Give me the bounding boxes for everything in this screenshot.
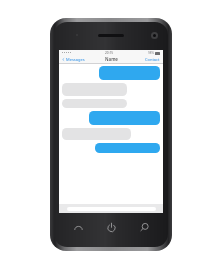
button[interactable]: Search	[134, 219, 154, 235]
button[interactable]	[99, 66, 160, 80]
button[interactable]: Messages	[62, 57, 85, 62]
button[interactable]: Home	[68, 219, 88, 235]
button[interactable]	[95, 143, 160, 153]
button[interactable]	[62, 83, 127, 96]
button[interactable]: Contact	[145, 57, 160, 62]
button[interactable]	[89, 111, 160, 125]
staticText: Messages	[66, 57, 85, 62]
staticText: Name	[105, 56, 118, 62]
button[interactable]	[62, 128, 131, 140]
button[interactable]	[62, 99, 127, 108]
staticText: 98%	[148, 51, 154, 55]
staticText: 20:15	[105, 51, 114, 55]
button[interactable]: Power	[101, 219, 121, 235]
